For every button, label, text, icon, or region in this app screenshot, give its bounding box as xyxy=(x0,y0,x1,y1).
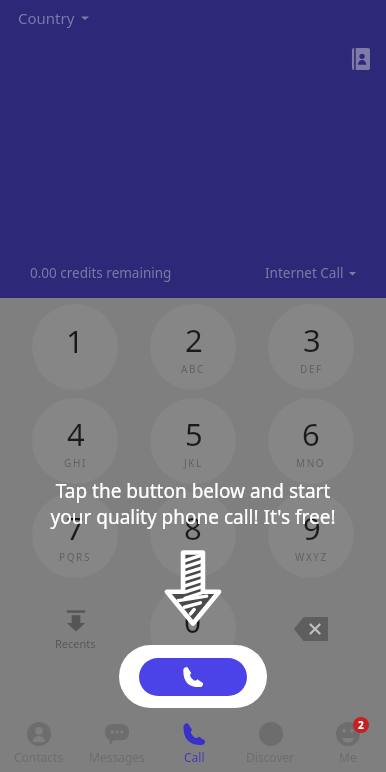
staticText: + xyxy=(190,642,197,657)
staticText: Contacts xyxy=(14,749,64,765)
button[interactable]: 7 xyxy=(32,492,118,578)
button[interactable]: Contacts xyxy=(346,46,372,72)
staticText: Recents xyxy=(55,636,96,651)
button[interactable]: 9 xyxy=(268,492,354,578)
staticText: DEF xyxy=(300,362,323,376)
button[interactable]: 8 xyxy=(150,492,236,578)
button[interactable]: 0.00 credits remaining xyxy=(16,258,186,288)
staticText: 2 xyxy=(358,718,364,732)
staticText: Messages xyxy=(89,749,145,765)
button[interactable]: 0 xyxy=(150,586,236,672)
staticText: Internet Call xyxy=(265,264,344,282)
staticText: PQRS xyxy=(59,550,91,564)
staticText: MNO xyxy=(296,456,326,470)
button[interactable]: Discover xyxy=(232,715,309,772)
button[interactable]: 5 xyxy=(150,398,236,484)
button[interactable]: Internet Call xyxy=(251,258,370,288)
button[interactable]: 2 xyxy=(309,715,386,772)
staticText: Me xyxy=(339,749,357,765)
button[interactable]: Recents xyxy=(32,586,118,672)
staticText: 0 xyxy=(184,601,202,642)
button[interactable]: Country xyxy=(16,4,91,32)
staticText: ABC xyxy=(181,362,206,376)
button[interactable]: Backspace xyxy=(268,586,354,672)
button[interactable]: 6 xyxy=(268,398,354,484)
staticText: 1 xyxy=(66,320,84,362)
button[interactable]: Call xyxy=(119,645,267,708)
staticText: Call xyxy=(184,749,205,765)
staticText: TUV xyxy=(181,550,205,564)
staticText: 8 xyxy=(184,507,202,549)
staticText: Country xyxy=(18,8,75,28)
staticText: 6 xyxy=(302,413,320,455)
button[interactable]: Contacts xyxy=(0,715,78,772)
staticText: 3 xyxy=(303,319,321,361)
button[interactable]: 1 xyxy=(32,304,118,390)
button[interactable]: 3 xyxy=(268,304,354,390)
button[interactable]: 2 xyxy=(150,304,236,390)
staticText: 7 xyxy=(66,507,84,549)
staticText: 9 xyxy=(303,507,321,549)
staticText: JKL xyxy=(184,456,203,470)
button[interactable]: 4 xyxy=(32,398,118,484)
staticText: 4 xyxy=(67,413,85,455)
staticText: GHI xyxy=(64,456,87,470)
staticText: 0.00 credits remaining xyxy=(30,264,172,282)
staticText: Discover xyxy=(246,749,295,765)
button[interactable]: Messages xyxy=(78,715,155,772)
staticText: Tap the button below and start your qual… xyxy=(50,478,336,530)
staticText: WXYZ xyxy=(295,550,328,564)
button[interactable]: Call xyxy=(155,715,232,772)
staticText: 5 xyxy=(185,413,203,455)
staticText: 2 xyxy=(185,319,203,361)
